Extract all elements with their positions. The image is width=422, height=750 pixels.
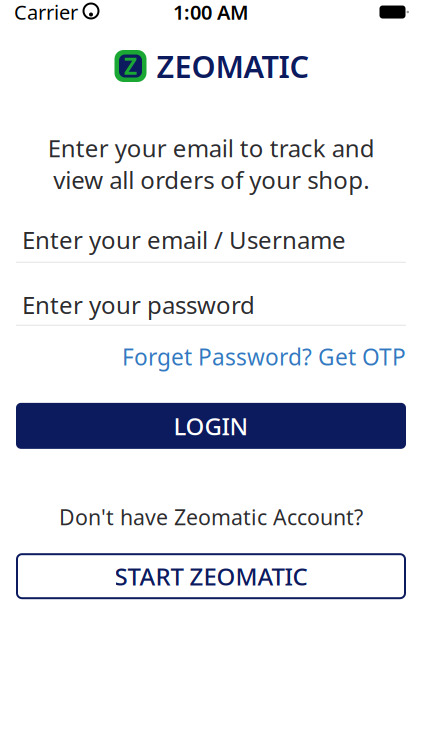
button[interactable]: Forget Password? Get OTP [122, 342, 406, 372]
staticText: ZEOMATIC [156, 46, 309, 86]
staticText: Forget Password? Get OTP [122, 342, 406, 372]
staticText: Don't have Zeomatic Account? [59, 503, 363, 531]
staticText: 1:00 AM [173, 0, 249, 25]
staticText: Enter your email to track and view all o… [47, 132, 374, 196]
staticText: Enter your email / Username [22, 224, 346, 256]
button[interactable]: START ZEOMATIC [17, 554, 405, 598]
staticText: START ZEOMATIC [114, 560, 307, 592]
staticText: LOGIN [173, 410, 248, 442]
staticText: Z [124, 51, 137, 81]
button[interactable]: Enter your email / Username [0, 218, 422, 262]
button[interactable]: LOGIN [16, 403, 406, 449]
staticText: Carrier [14, 0, 78, 25]
staticText: Enter your password [22, 289, 255, 321]
button[interactable]: Enter your password [0, 285, 422, 325]
